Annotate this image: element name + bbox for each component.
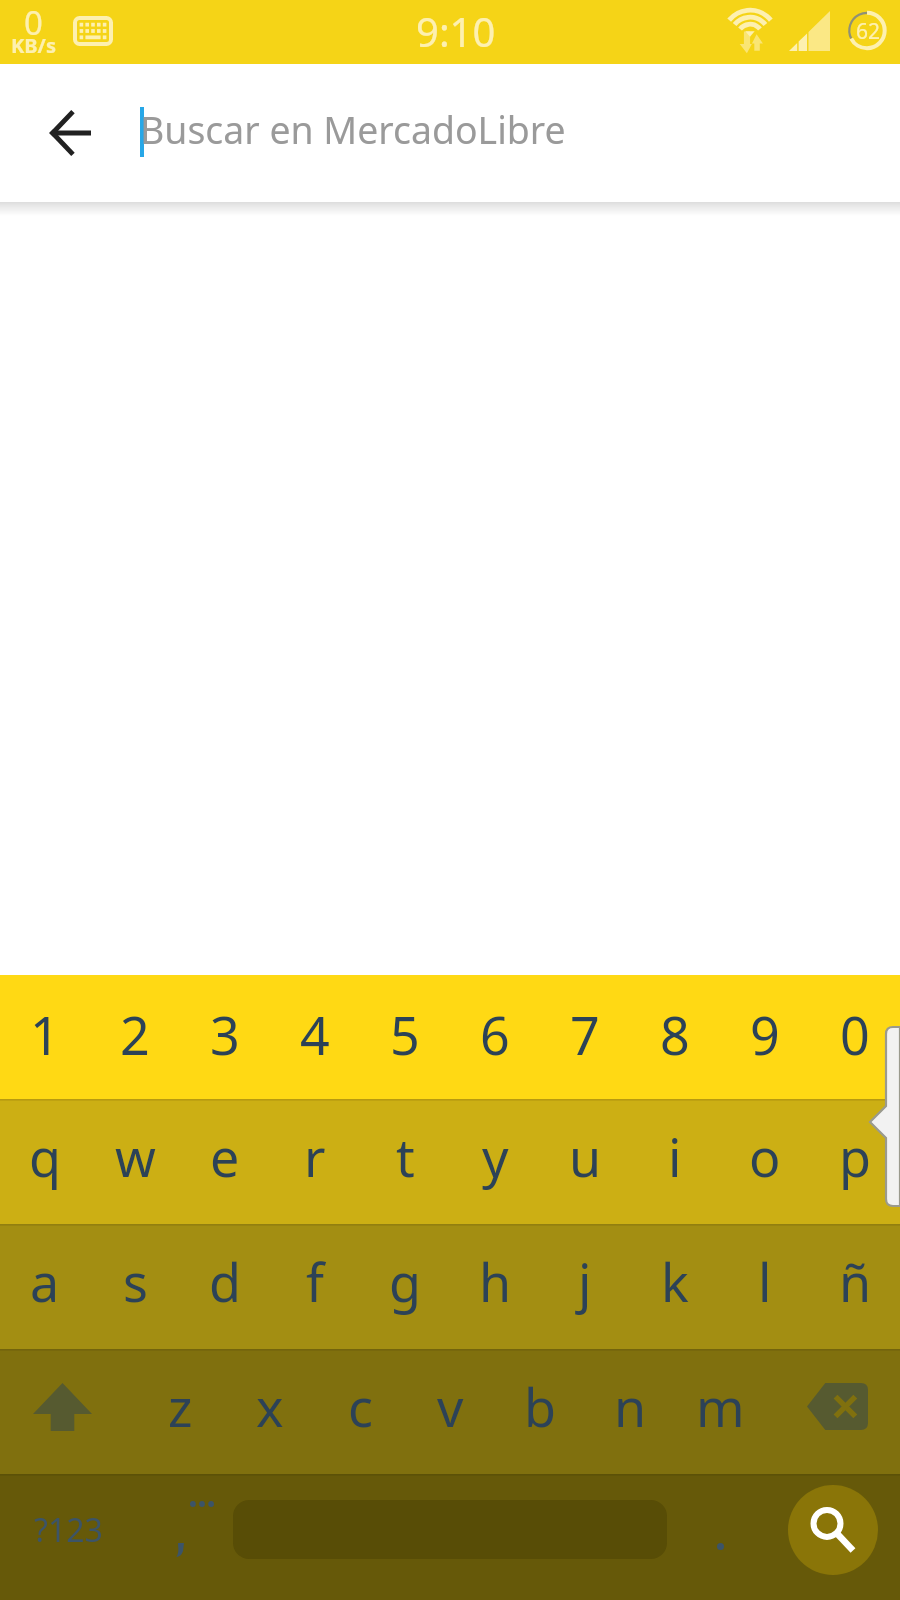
staticText: 2 <box>120 999 150 1070</box>
button[interactable]: Buscar en MercadoLibre <box>125 64 900 202</box>
button[interactable]: j <box>540 1225 630 1350</box>
staticText: 5 <box>390 999 420 1070</box>
button[interactable]: v <box>405 1350 495 1475</box>
button[interactable]: 2 <box>90 975 180 1100</box>
staticText: 9 <box>750 999 780 1070</box>
staticText: r <box>304 1121 326 1192</box>
staticText: s <box>123 1246 148 1317</box>
staticText: q <box>29 1121 61 1192</box>
staticText: z <box>168 1371 193 1442</box>
staticText: t <box>396 1121 415 1192</box>
staticText: o <box>749 1121 781 1192</box>
staticText: 1 <box>30 999 60 1070</box>
button[interactable]: g <box>360 1225 450 1350</box>
button[interactable] <box>140 1475 235 1600</box>
button[interactable] <box>680 1475 760 1600</box>
staticText: v <box>437 1371 464 1442</box>
button[interactable]: 7 <box>540 975 630 1100</box>
button[interactable]: w <box>90 1100 180 1225</box>
button[interactable]: q <box>0 1100 90 1225</box>
staticText: 6 <box>480 999 510 1070</box>
button[interactable]: h <box>450 1225 540 1350</box>
button[interactable]: n <box>585 1350 675 1475</box>
button[interactable]: c <box>315 1350 405 1475</box>
staticText: p <box>839 1121 871 1192</box>
button[interactable]: z <box>135 1350 225 1475</box>
staticText: 0 <box>840 999 870 1070</box>
staticText: 7 <box>570 999 600 1070</box>
button[interactable]: y <box>450 1100 540 1225</box>
staticText: ?123 <box>34 1508 103 1552</box>
button[interactable]: 5 <box>360 975 450 1100</box>
button[interactable]: ?123 <box>12 1475 124 1585</box>
button[interactable]: p <box>810 1100 900 1225</box>
button[interactable]: Search <box>788 1485 878 1575</box>
button[interactable]: a <box>0 1225 90 1350</box>
button[interactable]: o <box>720 1100 810 1225</box>
button[interactable]: b <box>495 1350 585 1475</box>
button[interactable]: m <box>675 1350 765 1475</box>
button[interactable]: e <box>180 1100 270 1225</box>
button[interactable]: 3 <box>180 975 270 1100</box>
staticText: d <box>209 1246 241 1317</box>
button[interactable]: t <box>360 1100 450 1225</box>
button[interactable]: Back <box>15 78 125 188</box>
staticText: Buscar en MercadoLibre <box>140 104 566 155</box>
staticText: w <box>115 1121 156 1192</box>
staticText: c <box>348 1371 373 1442</box>
button[interactable]: f <box>270 1225 360 1350</box>
staticText: a <box>30 1246 60 1317</box>
staticText: x <box>256 1371 284 1442</box>
button[interactable]: i <box>630 1100 720 1225</box>
staticText: h <box>479 1246 512 1317</box>
button[interactable]: 0 <box>810 975 900 1100</box>
button[interactable]: 4 <box>270 975 360 1100</box>
button[interactable]: l <box>720 1225 810 1350</box>
staticText: n <box>614 1371 647 1442</box>
button[interactable]: u <box>540 1100 630 1225</box>
button[interactable]: d <box>180 1225 270 1350</box>
staticText: m <box>696 1371 745 1442</box>
button[interactable]: Backspace <box>775 1350 900 1475</box>
staticText: b <box>524 1371 556 1442</box>
staticText: ñ <box>839 1246 872 1317</box>
button[interactable]: 1 <box>0 975 90 1100</box>
button[interactable]: ñ <box>810 1225 900 1350</box>
staticText: j <box>578 1246 592 1317</box>
staticText: k <box>661 1246 689 1317</box>
staticText: f <box>306 1246 324 1317</box>
staticText: i <box>668 1121 682 1192</box>
button[interactable]: r <box>270 1100 360 1225</box>
staticText: 9:10 <box>416 4 496 58</box>
button[interactable]: 8 <box>630 975 720 1100</box>
staticText: 62 <box>856 17 881 46</box>
staticText: u <box>569 1121 602 1192</box>
button[interactable]: s <box>90 1225 180 1350</box>
staticText: e <box>210 1121 240 1192</box>
button[interactable]: Shift <box>0 1350 125 1475</box>
staticText: 0 <box>24 0 43 45</box>
button[interactable]: k <box>630 1225 720 1350</box>
staticText: l <box>758 1246 772 1317</box>
button[interactable]: x <box>225 1350 315 1475</box>
button[interactable]: 9 <box>720 975 810 1100</box>
button[interactable]: 6 <box>450 975 540 1100</box>
staticText: KB/s <box>11 32 56 59</box>
staticText: 4 <box>300 999 330 1070</box>
staticText: 3 <box>210 999 240 1070</box>
staticText: y <box>482 1121 509 1192</box>
staticText: g <box>389 1246 421 1317</box>
staticText: 8 <box>660 999 690 1070</box>
